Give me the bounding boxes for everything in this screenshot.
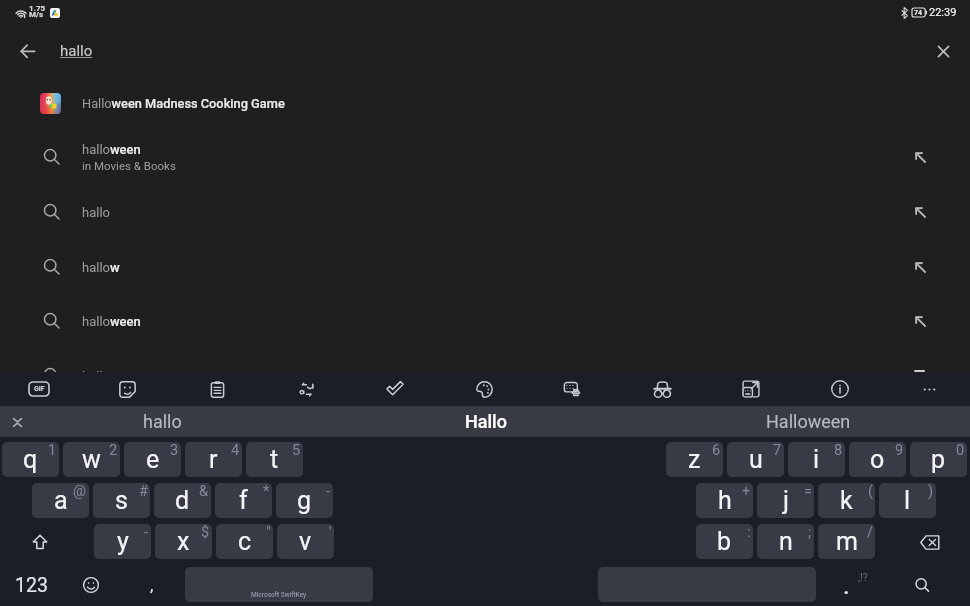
button[interactable]: Use suggestion hallow xyxy=(908,255,932,279)
button[interactable]: k xyxy=(818,483,875,518)
button[interactable]: Expand predictions xyxy=(6,411,28,433)
button[interactable]: y xyxy=(94,524,151,559)
button[interactable]: Halloween Madness Cooking Game xyxy=(0,80,970,126)
button[interactable]: Search xyxy=(902,569,942,601)
staticText: h xyxy=(718,486,732,515)
staticText: p xyxy=(931,445,946,474)
button[interactable]: e xyxy=(124,442,181,477)
staticText: # xyxy=(139,483,148,500)
button[interactable]: GIF xyxy=(22,372,56,406)
staticText: k xyxy=(840,486,853,515)
staticText: u xyxy=(749,445,763,474)
button[interactable]: d xyxy=(154,483,211,518)
button[interactable]: Themes xyxy=(467,372,501,406)
button[interactable]: Resize keyboard xyxy=(734,372,768,406)
button[interactable]: t xyxy=(246,442,303,477)
button[interactable]: Tasks xyxy=(378,372,412,406)
button[interactable]: j xyxy=(757,483,814,518)
button[interactable]: Use suggestion hallo xyxy=(908,200,932,224)
staticText: 74 xyxy=(914,9,923,17)
button[interactable]: w xyxy=(63,442,120,477)
staticText: " xyxy=(266,524,271,541)
staticText: halloween xyxy=(82,314,141,329)
staticText: in Movies & Books xyxy=(82,159,176,172)
button[interactable]: Numbers and symbols xyxy=(8,569,54,601)
staticText: ,!? xyxy=(858,571,868,583)
button[interactable]: x xyxy=(155,524,212,559)
staticText: & xyxy=(199,483,209,500)
button[interactable]: r xyxy=(185,442,242,477)
staticText: ( xyxy=(868,483,873,500)
button[interactable]: u xyxy=(727,442,784,477)
button[interactable]: halloween xyxy=(0,294,970,348)
staticText: . xyxy=(843,571,850,600)
staticText: y xyxy=(117,527,129,556)
button[interactable]: z xyxy=(666,442,723,477)
button[interactable]: f xyxy=(215,483,272,518)
button[interactable]: Emoji xyxy=(74,569,108,601)
button[interactable]: hallo xyxy=(0,185,970,239)
staticText: ) xyxy=(928,483,934,500)
staticText: hallo xyxy=(60,42,93,60)
button[interactable]: s xyxy=(93,483,150,518)
button[interactable]: More xyxy=(912,372,946,406)
button[interactable]: halloween party xyxy=(0,349,970,403)
staticText: 2 xyxy=(109,442,118,459)
staticText: halloween party xyxy=(82,369,174,384)
staticText: f xyxy=(239,486,248,515)
button[interactable]: Space xyxy=(185,567,373,602)
button[interactable]: i xyxy=(788,442,845,477)
button[interactable]: v xyxy=(277,524,334,559)
button[interactable]: hallo xyxy=(60,42,93,60)
button[interactable]: Use suggestion halloween xyxy=(908,309,932,333)
button[interactable]: Incognito xyxy=(645,372,679,406)
button[interactable]: Backspace xyxy=(912,529,948,555)
button[interactable]: Hide keyboard xyxy=(905,364,933,378)
staticText: 123 xyxy=(15,574,48,597)
button[interactable]: g xyxy=(276,483,333,518)
button[interactable]: Settings xyxy=(556,372,590,406)
button[interactable]: Hallo xyxy=(324,406,647,437)
button[interactable]: p xyxy=(910,442,967,477)
button[interactable]: Use suggestion halloween xyxy=(908,145,932,169)
staticText: M/s xyxy=(29,10,44,19)
button[interactable]: Halloween xyxy=(647,406,970,437)
button[interactable]: q xyxy=(2,442,59,477)
button[interactable]: Clipboard xyxy=(200,372,234,406)
button[interactable]: c xyxy=(216,524,273,559)
staticText: , xyxy=(150,575,154,595)
staticText: v xyxy=(299,527,312,556)
button[interactable]: Back xyxy=(12,35,44,67)
button[interactable]: Stickers xyxy=(110,372,144,406)
button[interactable]: Use suggestion halloween party xyxy=(908,364,932,388)
button[interactable]: n xyxy=(757,524,814,559)
button[interactable]: Info xyxy=(823,372,857,406)
button[interactable]: Shift xyxy=(22,529,58,555)
button[interactable]: l xyxy=(879,483,936,518)
staticText: c xyxy=(238,527,252,556)
button[interactable]: Clear search xyxy=(927,35,959,67)
button[interactable]: h xyxy=(696,483,753,518)
staticText: q xyxy=(23,445,38,474)
button[interactable]: hallow xyxy=(0,240,970,294)
staticText: 22:39 xyxy=(929,6,957,19)
staticText: s xyxy=(115,486,128,515)
staticText: 1 xyxy=(48,442,57,459)
staticText: 0 xyxy=(956,442,965,459)
staticText: ; xyxy=(808,524,812,541)
button[interactable]: hallo xyxy=(0,406,324,437)
button[interactable]: a xyxy=(32,483,89,518)
staticText: Halloween Madness Cooking Game xyxy=(82,96,285,111)
staticText: j xyxy=(783,486,789,515)
staticText: Hallo xyxy=(465,411,507,432)
button[interactable]: m xyxy=(818,524,875,559)
button[interactable]: Period xyxy=(832,567,880,602)
button[interactable]: halloween xyxy=(0,130,970,184)
button[interactable]: Translate xyxy=(289,372,323,406)
button[interactable]: o xyxy=(849,442,906,477)
button[interactable]: , xyxy=(136,569,168,601)
staticText: i xyxy=(813,445,820,474)
button[interactable]: b xyxy=(696,524,753,559)
staticText: l xyxy=(904,486,911,515)
